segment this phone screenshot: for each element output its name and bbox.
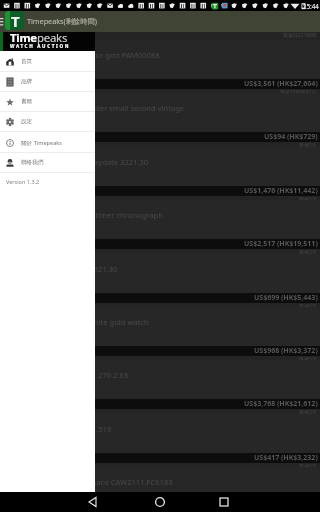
button[interactable]: 聯絡我們 [0,153,95,173]
staticText: 聯絡我們 [21,159,44,166]
staticText: ROLEX oyster 3521.30 [40,264,118,274]
staticText: 最後5天 [299,142,317,148]
button[interactable]: TAG Heuer monaco CAW2111.FC6183 [0,467,320,512]
staticText: US$968 (HK$3,372) [254,346,318,356]
button[interactable]: JAEGER Reverso 270.2.63 [0,360,320,415]
button[interactable]: PANERAI Luminor gmt PAM00088 [0,40,320,95]
staticText: 最後5天 [299,303,317,309]
staticText: JAEGER Reverso 270.2.63 [40,370,129,380]
staticText: 最後2日21時間 [283,32,317,39]
button[interactable]: Home [150,492,170,512]
staticText: peaks [37,30,68,46]
button[interactable]: 設定 [0,112,95,132]
staticText: OMEGA Seamaster small second vintage [40,103,185,113]
button[interactable]: ROLEX oyster 3521.30 [0,254,320,309]
staticText: 關於 Timepeaks [21,139,62,147]
staticText: US$1,476 (HK$11,442) [244,186,318,196]
staticText: Timepeaks(剩餘時間) [27,16,97,26]
staticText: HAMILTON HR1.519 [40,424,112,434]
staticText: T [11,11,20,30]
staticText: Version 1.3.2 [6,178,40,185]
button[interactable]: Back [86,492,106,512]
staticText: US$3,561 (HK$27,604) [244,79,318,89]
staticText: 首页 [21,58,33,65]
button[interactable]: 品牌 [0,72,95,92]
staticText: US$94 (HK$729) [264,132,318,142]
button[interactable]: Open navigation drawer [0,11,8,32]
staticText: TAG Heuer monaco CAW2111.FC6183 [40,477,173,487]
staticText: 品牌 [21,78,33,85]
staticText: 15:44 [303,2,319,10]
button[interactable]: 首页 [0,52,95,72]
button[interactable]: 書籤 [0,92,95,112]
staticText: US$417 (HK$3,232) [254,453,318,463]
staticText: US$3,768 (HK$21,612) [244,399,318,409]
button[interactable]: Recent apps [214,492,234,512]
button[interactable]: OMEGA Seamaster small second vintage [0,93,320,148]
staticText: 設定 [21,118,33,125]
button[interactable]: 關於 Timepeaks [0,133,95,153]
staticText: 最後5天 [299,356,317,362]
button[interactable]: ROLEX oyster daydate 3221.30 [0,147,320,202]
staticText: 最後15時間43分 [280,89,317,95]
staticText: 最後5天 [299,463,317,469]
staticText: US$2,517 (HK$19,511) [244,239,318,249]
staticText: Time [10,30,37,46]
staticText: 書籤 [21,98,33,105]
staticText: PANERAI [40,69,63,77]
staticText: 最後5天 [299,409,317,415]
button[interactable]: CARTIER 18k White gold watch [0,307,320,362]
button[interactable]: HAMILTON HR1.519 [0,414,320,469]
button[interactable]: BREITLING navitimer chronograph [0,200,320,255]
staticText: US$699 (HK$5,443) [254,293,318,303]
staticText: 最後5天 [299,249,317,255]
staticText: PANERAI Luminor gmt PAM00088 [40,50,160,60]
staticText: WATCH AUCTION [10,43,71,49]
staticText: BREITLING navitimer chronograph [40,210,163,220]
staticText: ROLEX oyster daydate 3221.30 [40,157,149,167]
staticText: CARTIER 18k White gold watch [40,317,149,327]
staticText: 最後5天 [299,196,317,202]
